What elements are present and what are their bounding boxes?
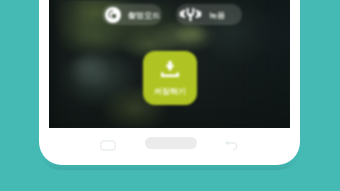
button[interactable]: Home [145,137,197,149]
staticText: 녹음 [209,10,225,20]
staticText: 촬영모드 [128,10,160,20]
button[interactable]: 촬영모드 [102,4,162,25]
button[interactable]: 저장하기 [143,51,197,105]
button[interactable]: Recent apps [97,133,119,157]
button[interactable]: Back [220,133,242,157]
staticText: 저장하기 [154,86,186,96]
button[interactable]: 녹음 [176,4,242,25]
